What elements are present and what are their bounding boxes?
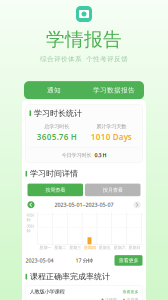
- staticText: 课程正确率完成率统计: [30, 272, 110, 281]
- staticText: 总学习时长: [44, 123, 69, 130]
- staticText: 学习时长统计: [34, 108, 82, 118]
- staticText: 30分钟: [26, 223, 34, 233]
- button[interactable]: 按周查看: [27, 184, 83, 196]
- staticText: 学习时间详情: [30, 169, 78, 179]
- staticText: 星期五: [99, 245, 111, 250]
- button[interactable]: 上一周: [27, 201, 34, 208]
- staticText: 17 分钟: [75, 257, 92, 264]
- staticText: 完成率: [126, 297, 138, 300]
- staticText: 综合评价体系 个性考评反馈: [40, 55, 128, 63]
- staticText: 按周查看: [45, 187, 65, 193]
- staticText: 星期二: [54, 245, 66, 250]
- staticText: 学习数据报告: [93, 86, 135, 94]
- staticText: 0.3 H: [94, 152, 106, 159]
- staticText: 查看更多: [118, 257, 138, 264]
- staticText: 60分钟: [26, 212, 34, 222]
- staticText: 人教版小学课程: [29, 288, 64, 295]
- staticText: 星期一: [39, 245, 51, 250]
- button[interactable]: 学习数据报告: [84, 81, 144, 99]
- staticText: 今日学习时长: [61, 152, 91, 159]
- staticText: 3605.76 H: [37, 132, 77, 142]
- staticText: 累计学习天数: [96, 123, 126, 130]
- staticText: 星期日: [129, 245, 141, 250]
- staticText: 2023-05-01~2023-05-07: [54, 201, 113, 208]
- staticText: 2023-05-04: [25, 257, 53, 264]
- staticText: 星期三: [69, 245, 81, 250]
- staticText: 1010 Days: [91, 132, 132, 142]
- button[interactable]: 下一周: [133, 201, 140, 208]
- staticText: 星期四: [84, 245, 96, 250]
- button[interactable]: 按月查看: [85, 184, 140, 196]
- button[interactable]: 查看更多: [114, 255, 142, 266]
- staticText: 按月查看: [103, 187, 123, 193]
- staticText: 正确率: [105, 297, 117, 300]
- staticText: 通知: [47, 86, 61, 94]
- staticText: 查看更多: [122, 289, 138, 294]
- button[interactable]: 通知: [24, 81, 84, 99]
- staticText: 星期六: [114, 245, 126, 250]
- staticText: 学情报告: [46, 28, 122, 51]
